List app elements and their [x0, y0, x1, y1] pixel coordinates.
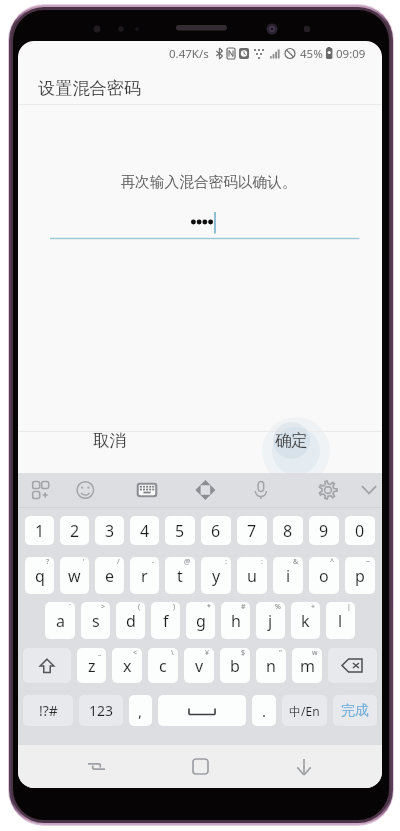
button[interactable]: ,: [129, 695, 152, 726]
button[interactable]: a: [45, 602, 75, 639]
staticText: |: [347, 602, 351, 612]
staticText: -: [152, 557, 155, 567]
button[interactable]: d: [116, 602, 145, 639]
staticText: 9: [319, 520, 329, 542]
staticText: ,: [138, 701, 143, 721]
button[interactable]: k: [291, 602, 320, 639]
button[interactable]: 2: [60, 516, 89, 545]
staticText: l: [338, 610, 343, 632]
button[interactable]: c: [148, 648, 178, 683]
staticText: z: [88, 655, 96, 677]
staticText: (: [138, 602, 141, 612]
staticText: y: [212, 565, 221, 587]
button[interactable]: b: [220, 648, 250, 683]
staticText: ": [279, 648, 282, 658]
staticText: j: [268, 610, 273, 632]
button[interactable]: u: [237, 557, 267, 594]
staticText: h: [231, 610, 241, 632]
staticText: 0.47K/s: [169, 46, 209, 62]
staticText: 6: [211, 520, 221, 542]
button[interactable]: y: [201, 557, 231, 594]
staticText: >: [101, 602, 106, 612]
button[interactable]: l: [326, 602, 355, 639]
button[interactable]: j: [256, 602, 285, 639]
button[interactable]: v: [184, 648, 214, 683]
staticText: 3: [105, 520, 115, 542]
button[interactable]: 完成: [333, 695, 377, 726]
button[interactable]: Hide keyboard: [278, 745, 330, 788]
button[interactable]: Backspace: [328, 648, 377, 683]
button[interactable]: w: [60, 557, 89, 594]
staticText: i: [286, 565, 291, 587]
staticText: 09:09: [336, 46, 366, 62]
staticText: _: [98, 648, 102, 658]
staticText: d: [126, 610, 136, 632]
staticText: 设置混合密码: [38, 77, 142, 99]
button[interactable]: 8: [273, 516, 303, 545]
button[interactable]: p: [345, 557, 375, 594]
staticText: c: [159, 655, 167, 677]
button[interactable]: n: [256, 648, 286, 683]
button[interactable]: .: [252, 695, 276, 726]
staticText: t: [177, 565, 183, 587]
button[interactable]: 123: [79, 695, 123, 726]
button[interactable]: h: [221, 602, 250, 639]
button[interactable]: r: [130, 557, 159, 594]
staticText: :: [225, 557, 227, 567]
staticText: w: [312, 648, 318, 658]
button[interactable]: 3: [95, 516, 124, 545]
staticText: .: [262, 701, 267, 721]
button[interactable]: Home: [174, 745, 226, 788]
staticText: ?: [46, 557, 50, 567]
button[interactable]: 中/En: [282, 695, 327, 726]
button[interactable]: o: [309, 557, 339, 594]
staticText: 5: [175, 520, 185, 542]
staticText: &: [293, 557, 299, 567]
button[interactable]: f: [151, 602, 180, 639]
staticText: 7: [247, 520, 257, 542]
staticText: 中/En: [289, 703, 320, 719]
button[interactable]: e: [95, 557, 124, 594]
button[interactable]: Recents: [70, 745, 122, 788]
staticText: 123: [89, 701, 114, 720]
button[interactable]: t: [165, 557, 195, 594]
button[interactable]: 4: [130, 516, 159, 545]
staticText: %: [275, 602, 281, 612]
staticText: *: [207, 602, 211, 612]
button[interactable]: g: [186, 602, 215, 639]
button[interactable]: [158, 695, 246, 726]
staticText: ¥: [205, 648, 210, 658]
button[interactable]: 0: [345, 516, 375, 545]
staticText: o: [319, 565, 329, 587]
staticText: g: [196, 610, 206, 632]
button[interactable]: 6: [201, 516, 231, 545]
button[interactable]: z: [77, 648, 106, 683]
staticText: f: [163, 610, 169, 632]
staticText: b: [230, 655, 240, 677]
button[interactable]: 5: [165, 516, 195, 545]
button[interactable]: 确定: [200, 419, 382, 462]
button[interactable]: Shift: [23, 648, 71, 683]
staticText: s: [92, 610, 100, 632]
button[interactable]: 7: [237, 516, 267, 545]
button[interactable]: 1: [25, 516, 54, 545]
button[interactable]: i: [273, 557, 303, 594]
button[interactable]: m: [292, 648, 322, 683]
staticText: 45%: [300, 46, 323, 62]
staticText: m: [300, 655, 315, 677]
button[interactable]: x: [112, 648, 142, 683]
staticText: e: [105, 565, 115, 587]
staticText: 0: [355, 520, 365, 542]
staticText: q: [35, 565, 45, 587]
button[interactable]: 取消: [18, 419, 200, 462]
staticText: ^: [330, 557, 335, 567]
staticText: \: [171, 648, 174, 658]
staticText: w: [68, 565, 81, 587]
button[interactable]: !?#: [23, 695, 73, 726]
button[interactable]: q: [25, 557, 54, 594]
button[interactable]: 9: [309, 516, 339, 545]
staticText: ~: [366, 557, 371, 567]
staticText: `: [69, 602, 71, 612]
button[interactable]: s: [81, 602, 110, 639]
staticText: p: [355, 565, 365, 587]
